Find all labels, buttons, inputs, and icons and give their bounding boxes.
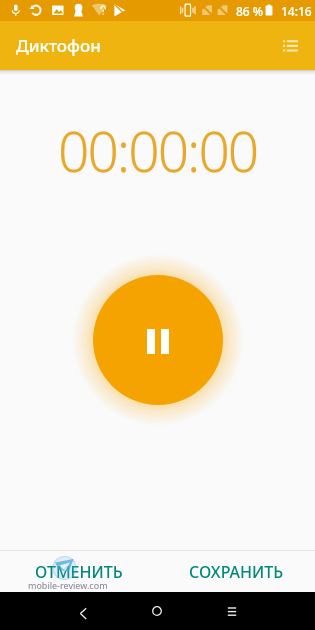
button[interactable]: Back [63, 592, 103, 630]
staticText: Диктофон [16, 34, 101, 57]
button[interactable]: Home [137, 592, 177, 630]
staticText: 00:00:00 [58, 113, 258, 188]
button[interactable]: ОТМЕНИТЬ [0, 551, 157, 592]
staticText: ОТМЕНИТЬ [35, 561, 123, 583]
button[interactable]: СОХРАНИТЬ [157, 551, 315, 592]
staticText: mobile-review.com [28, 579, 108, 591]
button[interactable]: Pause recording [93, 275, 223, 405]
button[interactable]: Recent apps [212, 592, 252, 630]
staticText: 86 % [236, 3, 264, 19]
button[interactable]: Recordings list [272, 27, 309, 64]
staticText: СОХРАНИТЬ [189, 561, 284, 583]
staticText: 14:16 [281, 3, 312, 19]
